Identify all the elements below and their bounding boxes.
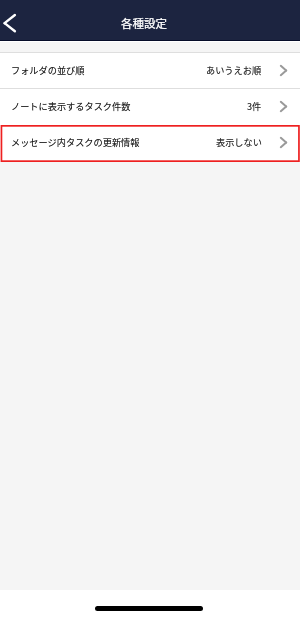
staticText: ノートに表示するタスク件数 bbox=[11, 99, 131, 112]
button[interactable]: メッセージ内タスクの更新情報 bbox=[0, 124, 300, 161]
button[interactable]: Back bbox=[0, 0, 34, 34]
staticText: あいうえお順 bbox=[206, 63, 262, 76]
staticText: 各種設定 bbox=[121, 15, 167, 32]
staticText: メッセージ内タスクの更新情報 bbox=[11, 135, 140, 148]
staticText: 表示しない bbox=[216, 135, 262, 148]
staticText: あいうえお順 bbox=[206, 63, 262, 76]
staticText: フォルダの並び順 bbox=[11, 63, 85, 76]
staticText: ノートに表示するタスク件数 bbox=[11, 99, 131, 112]
button[interactable]: フォルダの並び順 bbox=[0, 52, 300, 88]
staticText: フォルダの並び順 bbox=[11, 63, 85, 76]
staticText: 3件 bbox=[247, 99, 262, 112]
staticText: 3件 bbox=[247, 99, 262, 112]
staticText: メッセージ内タスクの更新情報 bbox=[11, 135, 140, 148]
staticText: 表示しない bbox=[216, 135, 262, 148]
button[interactable]: ノートに表示するタスク件数 bbox=[0, 88, 300, 124]
